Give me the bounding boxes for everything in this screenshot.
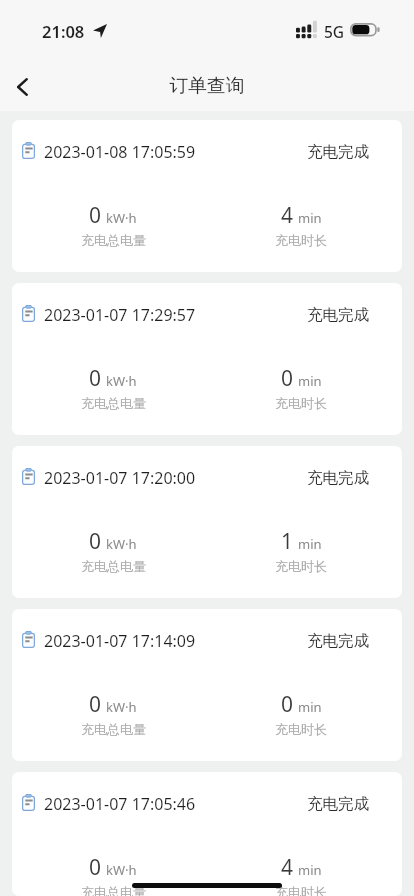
staticText: 充电完成 bbox=[307, 305, 369, 325]
staticText: 充电总电量 bbox=[81, 558, 146, 574]
staticText: 充电总电量 bbox=[81, 232, 146, 248]
staticText: 21:08 bbox=[42, 20, 85, 42]
button[interactable]: 2023-01-07 17:05:46 bbox=[12, 772, 402, 896]
staticText: 充电总电量 bbox=[81, 395, 146, 411]
staticText: 充电总电量 bbox=[81, 721, 146, 737]
staticText: 0 bbox=[89, 853, 102, 882]
staticText: 充电时长 bbox=[275, 721, 327, 737]
staticText: 0 bbox=[281, 690, 294, 719]
staticText: 订单查询 bbox=[169, 74, 245, 98]
staticText: 0 bbox=[89, 690, 102, 719]
button[interactable]: 2023-01-07 17:20:00 bbox=[12, 446, 402, 598]
staticText: kW·h bbox=[106, 209, 137, 227]
staticText: 0 bbox=[89, 527, 102, 556]
staticText: 充电完成 bbox=[307, 142, 369, 162]
staticText: 2023-01-07 17:14:09 bbox=[44, 630, 196, 652]
staticText: 2023-01-07 17:29:57 bbox=[44, 304, 196, 326]
staticText: 4 bbox=[281, 853, 294, 882]
staticText: 充电完成 bbox=[307, 794, 369, 814]
staticText: min bbox=[298, 535, 322, 553]
staticText: 5G bbox=[324, 21, 345, 42]
staticText: 充电时长 bbox=[275, 232, 327, 248]
staticText: 0 bbox=[89, 364, 102, 393]
staticText: min bbox=[298, 861, 322, 879]
staticText: 充电时长 bbox=[275, 395, 327, 411]
staticText: min bbox=[298, 372, 322, 390]
staticText: min bbox=[298, 209, 322, 227]
button[interactable]: 2023-01-07 17:14:09 bbox=[12, 609, 402, 761]
staticText: 0 bbox=[89, 201, 102, 230]
staticText: 4 bbox=[281, 201, 294, 230]
staticText: 2023-01-07 17:20:00 bbox=[44, 467, 196, 489]
staticText: min bbox=[298, 698, 322, 716]
staticText: 充电总电量 bbox=[81, 884, 146, 896]
staticText: 2023-01-07 17:05:46 bbox=[44, 793, 196, 815]
staticText: 1 bbox=[281, 527, 294, 556]
staticText: 0 bbox=[281, 364, 294, 393]
staticText: kW·h bbox=[106, 535, 137, 553]
staticText: kW·h bbox=[106, 861, 137, 879]
staticText: kW·h bbox=[106, 372, 137, 390]
staticText: kW·h bbox=[106, 698, 137, 716]
button[interactable]: 2023-01-07 17:29:57 bbox=[12, 283, 402, 435]
staticText: 充电完成 bbox=[307, 631, 369, 651]
button[interactable]: 2023-01-08 17:05:59 bbox=[12, 120, 402, 272]
staticText: 充电完成 bbox=[307, 468, 369, 488]
staticText: 充电时长 bbox=[275, 558, 327, 574]
staticText: 2023-01-08 17:05:59 bbox=[44, 141, 196, 163]
staticText: 充电时长 bbox=[275, 884, 327, 896]
button[interactable]: Back bbox=[0, 61, 46, 107]
